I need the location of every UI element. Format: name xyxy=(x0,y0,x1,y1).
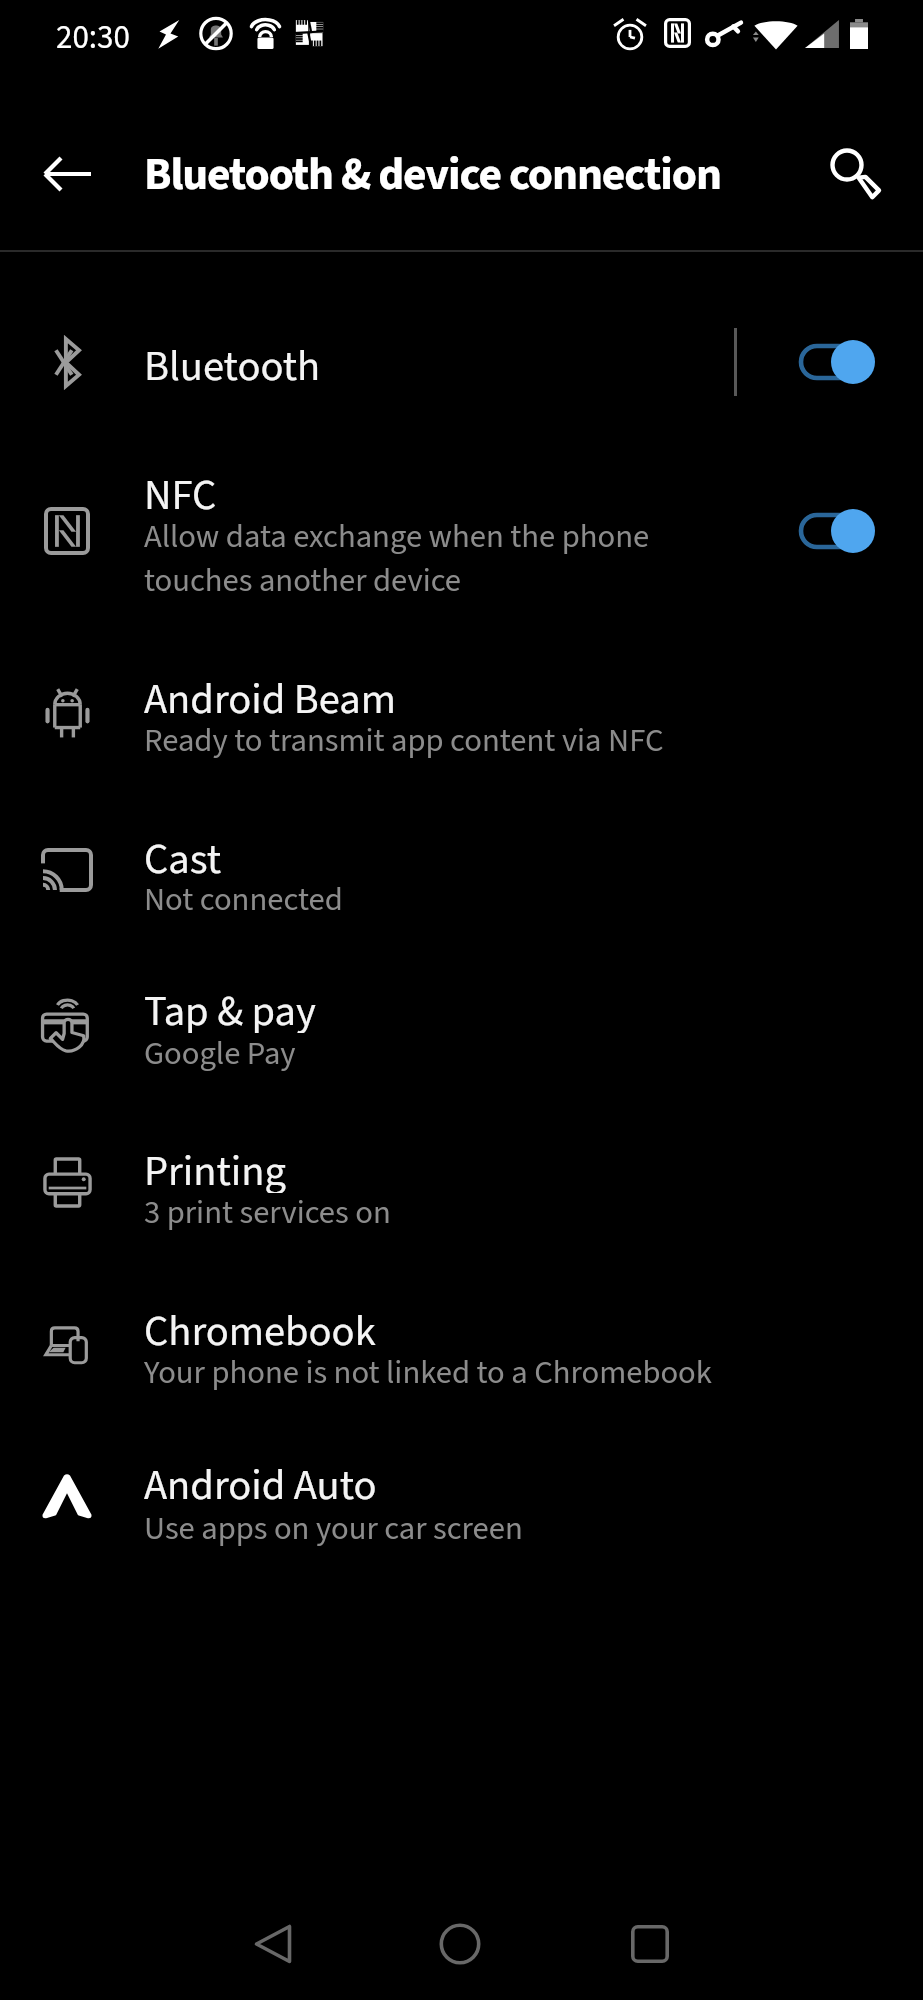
button[interactable]: Search xyxy=(813,133,893,213)
staticText: Allow data exchange when the phone xyxy=(144,514,650,558)
staticText: Not connected xyxy=(144,877,343,921)
staticText: Printing xyxy=(144,1141,286,1193)
staticText: Your phone is not linked to a Chromebook xyxy=(144,1350,712,1394)
staticText: Tap & pay xyxy=(144,981,316,1033)
staticText: Chromebook xyxy=(144,1301,376,1353)
staticText: Bluetooth & device connection xyxy=(144,142,721,198)
button[interactable]: Back xyxy=(213,1884,333,2000)
staticText: touches another device xyxy=(144,558,462,602)
staticText: Ready to transmit app content via NFC xyxy=(144,718,664,762)
staticText: Google Pay xyxy=(144,1031,296,1075)
staticText: 3 print services on xyxy=(144,1190,391,1234)
button[interactable]: Toggle xyxy=(780,322,890,402)
staticText: NFC xyxy=(144,465,217,517)
button[interactable]: Recents xyxy=(590,1884,710,2000)
staticText: Cast xyxy=(144,829,222,881)
staticText: Bluetooth xyxy=(144,336,321,388)
staticText: Android Beam xyxy=(144,669,396,721)
staticText: Use apps on your car screen xyxy=(144,1506,523,1550)
button[interactable]: Back xyxy=(28,134,108,214)
staticText: Android Auto xyxy=(144,1455,377,1507)
button[interactable]: Toggle xyxy=(780,491,890,571)
button[interactable]: Home xyxy=(400,1884,520,2000)
staticText: 20:30 xyxy=(56,14,130,61)
